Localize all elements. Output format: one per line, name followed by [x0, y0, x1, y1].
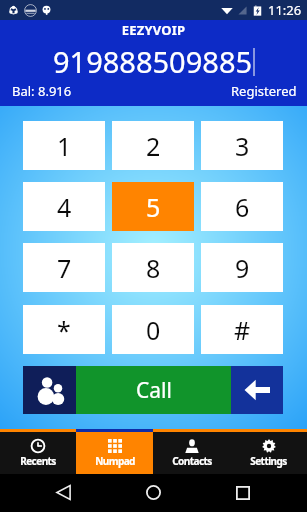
button[interactable]: # — [201, 305, 283, 354]
button[interactable]: 4 — [23, 182, 105, 231]
other: Overview — [236, 486, 250, 500]
staticText: 2 — [146, 129, 161, 163]
staticText: 3 — [235, 129, 250, 163]
staticText: Contacts — [172, 454, 212, 468]
other: Back — [56, 485, 71, 500]
staticText: 919888509885 — [53, 42, 253, 81]
staticText: * — [57, 313, 71, 347]
button[interactable]: Numpad — [76, 429, 153, 474]
staticText: 8 — [146, 251, 161, 285]
button[interactable]: Contacts — [153, 429, 230, 474]
staticText: 9 — [235, 251, 250, 285]
button[interactable]: 1 — [23, 121, 105, 170]
staticText: Registered — [231, 82, 297, 100]
button[interactable]: 0 — [112, 305, 194, 354]
button[interactable]: Contacts — [23, 366, 76, 414]
staticText: Settings — [250, 454, 287, 468]
staticText: 6 — [235, 190, 250, 224]
staticText: 11:26 — [268, 1, 302, 19]
staticText: # — [234, 313, 251, 347]
staticText: 0 — [146, 313, 161, 347]
staticText: 7 — [57, 251, 72, 285]
button[interactable]: 6 — [201, 182, 283, 231]
staticText: 1 — [57, 129, 72, 163]
button[interactable]: Backspace — [231, 366, 283, 414]
button[interactable]: 7 — [23, 243, 105, 292]
button[interactable]: 8 — [112, 243, 194, 292]
staticText: Numpad — [95, 454, 135, 468]
staticText: Recents — [20, 454, 56, 468]
button[interactable]: * — [23, 305, 105, 354]
staticText: Call — [136, 376, 172, 405]
button[interactable]: 2 — [112, 121, 194, 170]
other: Home — [146, 485, 161, 500]
staticText: 5 — [146, 190, 161, 224]
staticText: EEZYVOIP — [0, 21, 307, 39]
button[interactable]: 3 — [201, 121, 283, 170]
button[interactable]: Call — [76, 366, 231, 414]
button[interactable]: Settings — [230, 429, 307, 474]
staticText: Bal: 8.916 — [12, 82, 72, 100]
button[interactable]: 5 — [112, 182, 194, 231]
button[interactable]: Recents — [0, 429, 76, 474]
staticText: 4 — [57, 190, 72, 224]
button[interactable]: 9 — [201, 243, 283, 292]
